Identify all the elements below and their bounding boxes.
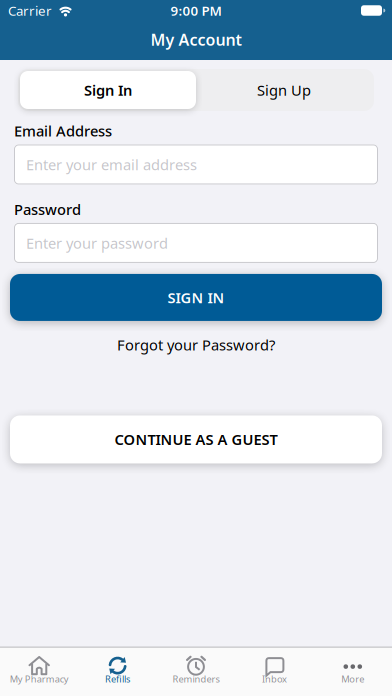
button[interactable]: CONTINUE AS A GUEST	[10, 415, 382, 463]
staticText: SIGN IN	[167, 288, 224, 307]
button[interactable]: Forgot your Password?	[117, 335, 275, 354]
staticText: Enter your email address	[26, 155, 197, 174]
staticText: My Pharmacy	[10, 673, 69, 685]
staticText: More	[341, 673, 364, 685]
button[interactable]: Inbox	[235, 654, 314, 690]
staticText: Email Address	[14, 121, 112, 140]
button[interactable]: More	[314, 654, 392, 690]
staticText: Inbox	[262, 673, 287, 685]
staticText: CONTINUE AS A GUEST	[114, 430, 277, 449]
button[interactable]: Sign Up	[196, 71, 372, 109]
staticText: Enter your password	[26, 233, 168, 253]
staticText: Sign Up	[257, 80, 311, 100]
staticText: Password	[14, 199, 81, 219]
staticText: My Account	[150, 29, 241, 50]
staticText: Sign In	[84, 80, 132, 100]
button[interactable]: Reminders	[157, 654, 235, 690]
button[interactable]: SIGN IN	[10, 274, 382, 321]
button[interactable]: Refills	[78, 654, 157, 690]
button[interactable]: My Pharmacy	[0, 654, 78, 690]
staticText: 9:00 PM	[170, 2, 221, 19]
staticText: Reminders	[172, 673, 219, 685]
staticText: Refills	[105, 673, 130, 685]
button[interactable]: Sign In	[20, 71, 196, 109]
staticText: Carrier	[8, 2, 52, 19]
staticText: Forgot your Password?	[117, 335, 275, 354]
